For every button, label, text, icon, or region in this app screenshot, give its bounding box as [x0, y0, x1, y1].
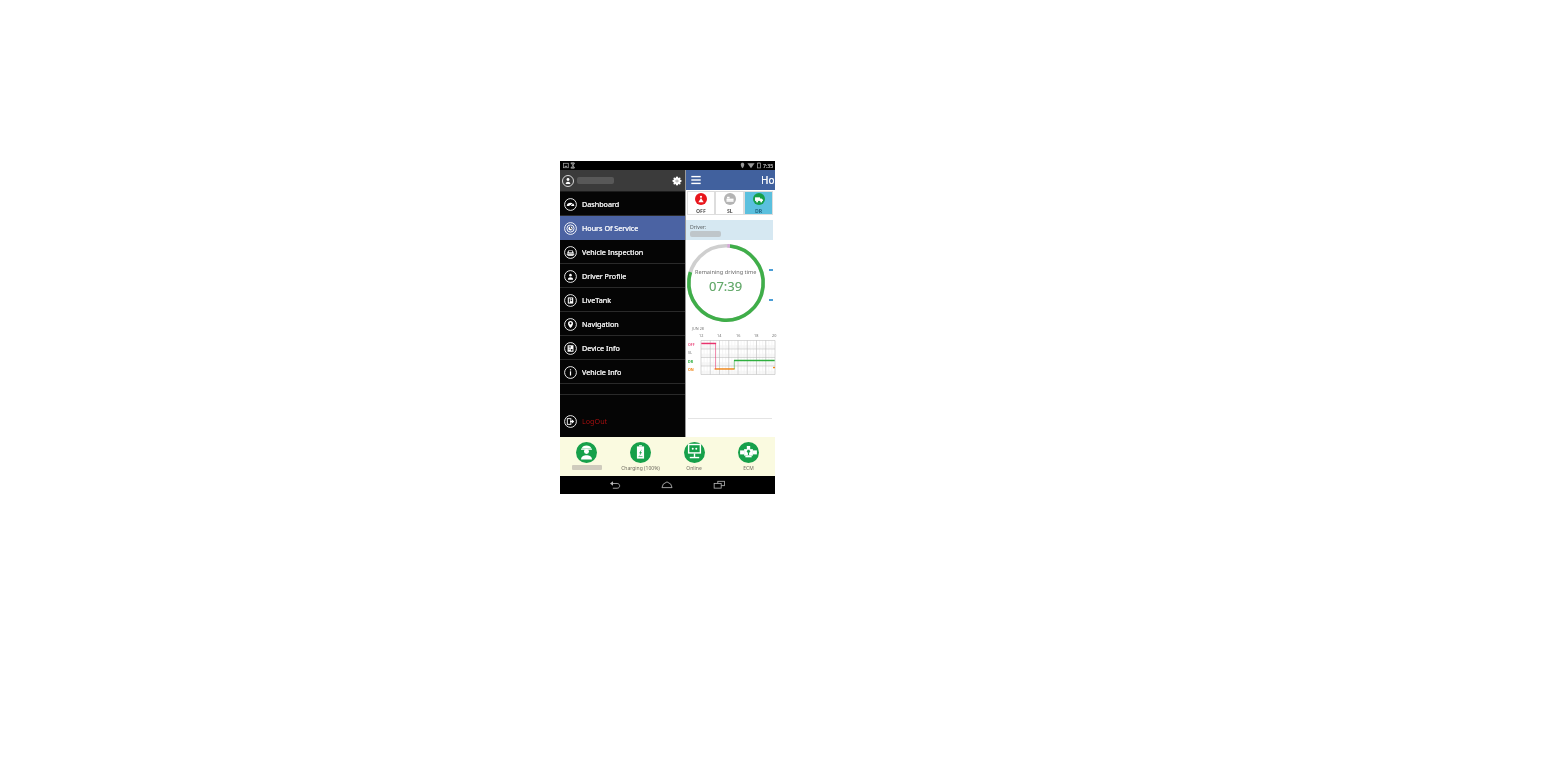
- button[interactable]: [560, 437, 613, 476]
- staticText: LiveTank: [582, 295, 612, 305]
- button[interactable]: Recents: [712, 478, 726, 492]
- button[interactable]: Settings: [560, 170, 685, 191]
- button[interactable]: LiveTank: [560, 288, 685, 312]
- button[interactable]: Vehicle Info: [560, 360, 685, 384]
- button[interactable]: OFF: [687, 191, 715, 215]
- staticText: Vehicle Info: [582, 367, 622, 377]
- button[interactable]: Online: [667, 437, 721, 476]
- button[interactable]: DR: [744, 191, 773, 215]
- staticText: Hou: [762, 173, 774, 187]
- staticText: Device Info: [582, 343, 620, 353]
- button[interactable]: Back: [608, 478, 622, 492]
- button[interactable]: Settings: [672, 176, 682, 186]
- staticText: OFF: [696, 207, 706, 214]
- staticText: DR: [688, 359, 693, 364]
- staticText: 07:39: [709, 277, 743, 295]
- staticText: Hours Of Service: [582, 223, 639, 233]
- button[interactable]: Device Info: [560, 336, 685, 360]
- staticText: Vehicle Inspection: [582, 247, 644, 257]
- staticText: Charging (100%): [621, 465, 660, 472]
- button[interactable]: Hours Of Service: [560, 216, 685, 240]
- staticText: LogOut: [582, 416, 608, 426]
- staticText: ECM: [743, 465, 754, 472]
- staticText: Navigation: [582, 319, 619, 329]
- staticText: Driver Profile: [582, 271, 627, 281]
- staticText: 12: [699, 333, 704, 338]
- button[interactable]: Home: [660, 478, 674, 492]
- button[interactable]: ECM: [721, 437, 775, 476]
- staticText: Online: [686, 465, 702, 472]
- button[interactable]: Navigation: [560, 312, 685, 336]
- staticText: 16: [736, 333, 741, 338]
- button[interactable]: Driver Profile: [560, 264, 685, 288]
- staticText: 7:35: [763, 162, 774, 169]
- staticText: Dashboard: [582, 199, 620, 209]
- button[interactable]: LogOut: [560, 409, 685, 433]
- button[interactable]: Charging (100%): [613, 437, 667, 476]
- staticText: SL: [727, 207, 733, 214]
- staticText: ON: [688, 367, 694, 372]
- staticText: 20: [772, 333, 777, 338]
- staticText: Remaining driving time: [695, 268, 757, 276]
- staticText: 18: [754, 333, 759, 338]
- staticText: OFF: [688, 342, 695, 347]
- staticText: DR: [755, 207, 763, 214]
- button[interactable]: Dashboard: [560, 192, 685, 216]
- staticText: JUN 28: [692, 326, 705, 331]
- button[interactable]: SL: [715, 191, 744, 215]
- staticText: 14: [717, 333, 722, 338]
- button[interactable]: Open navigation drawer: [690, 174, 702, 186]
- staticText: Driver:: [690, 223, 707, 230]
- button[interactable]: Vehicle Inspection: [560, 240, 685, 264]
- staticText: SL: [688, 350, 692, 355]
